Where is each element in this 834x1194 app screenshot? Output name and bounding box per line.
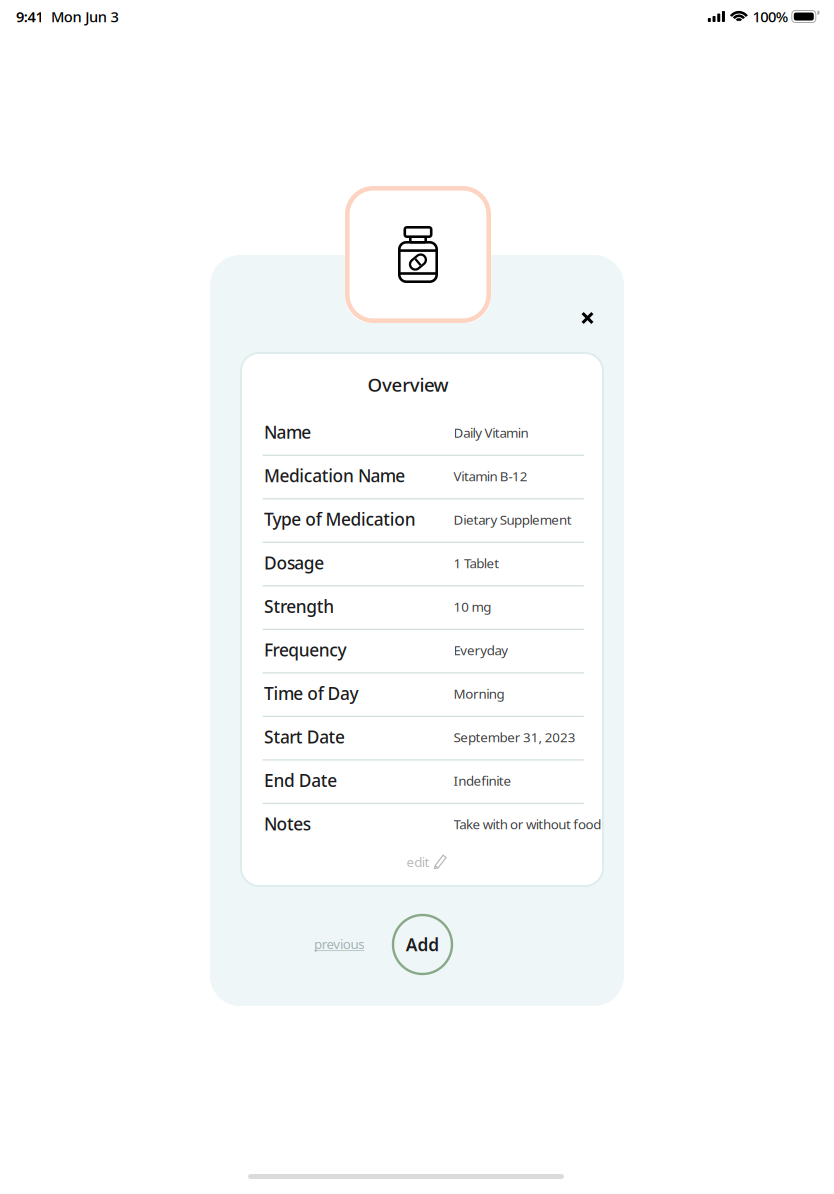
- staticText: Frequency: [264, 638, 347, 661]
- staticText: End Date: [264, 769, 337, 792]
- staticText: 100%: [752, 7, 788, 26]
- staticText: September 31, 2023: [454, 728, 576, 746]
- staticText: 9:41: [16, 7, 43, 26]
- staticText: Everyday: [454, 641, 508, 659]
- button[interactable]: edit: [398, 848, 455, 876]
- staticText: Indefinite: [454, 772, 511, 789]
- staticText: Name: [264, 421, 311, 444]
- staticText: Time of Day: [264, 682, 358, 705]
- staticText: Morning: [454, 685, 504, 702]
- staticText: Take with or without food: [454, 815, 601, 833]
- staticText: Notes: [264, 812, 311, 835]
- staticText: Dietary Supplement: [454, 511, 572, 528]
- staticText: previous: [314, 935, 364, 953]
- staticText: Overview: [367, 372, 449, 397]
- staticText: 1 Tablet: [454, 554, 499, 572]
- staticText: 10 mg: [454, 598, 491, 615]
- staticText: Strength: [264, 595, 334, 618]
- staticText: Dosage: [264, 551, 324, 574]
- button[interactable]: Close: [568, 298, 607, 337]
- staticText: Daily Vitamin: [454, 424, 528, 441]
- staticText: Start Date: [264, 725, 345, 748]
- staticText: Type of Medication: [264, 508, 416, 531]
- staticText: Mon Jun 3: [43, 7, 118, 26]
- staticText: Vitamin B-12: [454, 467, 528, 485]
- button[interactable]: Add: [393, 915, 452, 974]
- staticText: Add: [406, 933, 439, 956]
- staticText: Medication Name: [264, 464, 405, 487]
- button[interactable]: previous: [306, 929, 372, 959]
- staticText: edit: [406, 853, 429, 871]
